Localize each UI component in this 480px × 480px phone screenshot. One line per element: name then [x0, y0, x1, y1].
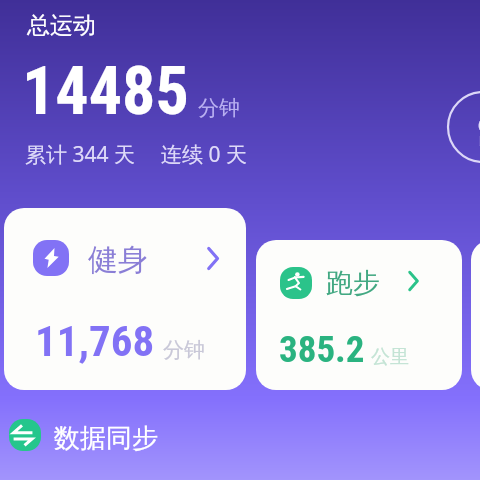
staticText: 数据同步 [54, 422, 158, 455]
button[interactable] [471, 240, 480, 390]
staticText: 连续 0 天 [161, 140, 247, 169]
staticText: 14485 [22, 53, 189, 130]
staticText: 385.2 [279, 328, 365, 371]
button[interactable]: 打开健身 [197, 243, 227, 273]
staticText: 分钟 [163, 337, 205, 363]
staticText: 累计 344 天 [25, 140, 135, 169]
button[interactable]: 健身 [4, 208, 246, 390]
staticText: 健身 [88, 241, 148, 279]
staticText: 跑步 [326, 266, 380, 300]
staticText: 目标 [478, 133, 480, 148]
staticText: 分钟 [198, 95, 240, 121]
staticText: 公里 [371, 345, 409, 369]
staticText: 68% [478, 116, 480, 135]
button[interactable]: 跑步 [256, 240, 462, 390]
staticText: 总运动 [27, 11, 96, 40]
button[interactable]: 打开跑步 [398, 266, 428, 296]
staticText: 11,768 [35, 316, 155, 366]
button[interactable]: 数据同步 [9, 418, 158, 452]
